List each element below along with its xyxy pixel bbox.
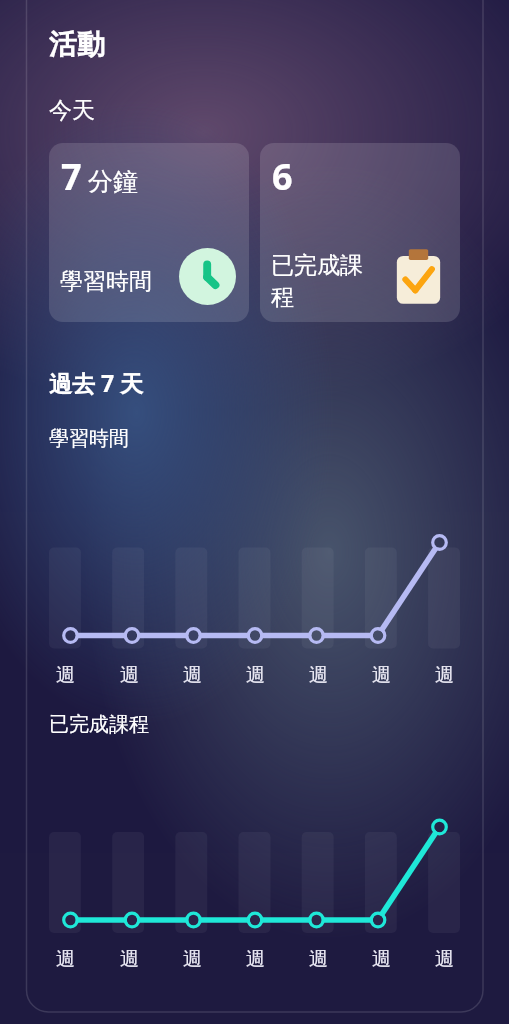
staticText: 週 bbox=[56, 947, 75, 971]
staticText: 週 bbox=[309, 947, 328, 971]
staticText: 週 bbox=[246, 663, 265, 687]
button[interactable]: 6 bbox=[260, 143, 460, 322]
staticText: 週 bbox=[435, 947, 454, 971]
staticText: 6 bbox=[272, 152, 293, 201]
staticText: 週 bbox=[435, 663, 454, 687]
button[interactable]: 7 分鐘 bbox=[49, 143, 249, 322]
staticText: 活動 bbox=[49, 27, 105, 62]
staticText: 週 bbox=[120, 947, 139, 971]
staticText: 過去 7 天 bbox=[49, 367, 144, 398]
staticText: 週 bbox=[309, 663, 328, 687]
staticText: 週 bbox=[183, 663, 202, 687]
staticText: 學習時間 bbox=[60, 267, 152, 296]
staticText: 週 bbox=[246, 947, 265, 971]
staticText: 已完成課程 bbox=[271, 251, 377, 312]
staticText: 週 bbox=[56, 663, 75, 687]
other: Completed courses bbox=[390, 248, 447, 305]
staticText: 週 bbox=[372, 663, 391, 687]
staticText: 週 bbox=[120, 663, 139, 687]
staticText: 今天 bbox=[49, 96, 95, 125]
staticText: 學習時間 bbox=[49, 426, 129, 451]
staticText: 週 bbox=[372, 947, 391, 971]
staticText: 已完成課程 bbox=[49, 712, 149, 737]
staticText: 週 bbox=[183, 947, 202, 971]
staticText: 7 分鐘 bbox=[61, 152, 139, 201]
other: Study time bbox=[179, 248, 236, 305]
